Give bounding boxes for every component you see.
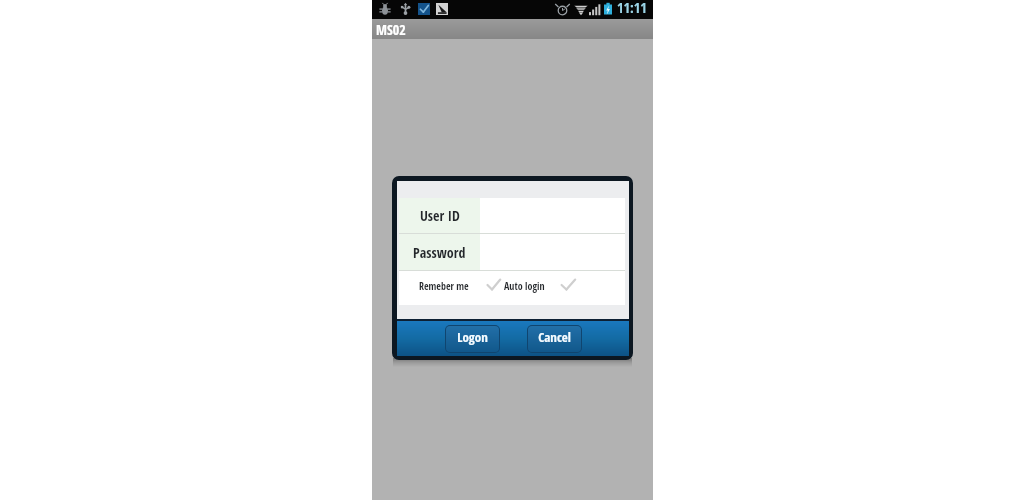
staticText: Logon <box>457 328 488 346</box>
button[interactable]: MS02 <box>372 19 653 39</box>
button[interactable]: User ID <box>399 198 480 233</box>
staticText: MS02 <box>376 20 406 39</box>
button[interactable]: Logon <box>446 326 499 352</box>
staticText: Auto login <box>504 279 545 293</box>
button[interactable]: Password <box>399 234 480 270</box>
button[interactable]: Cancel <box>528 326 581 352</box>
button[interactable]: Remeber me <box>399 271 501 305</box>
staticText: 11:11 <box>617 0 647 17</box>
staticText: Password <box>413 243 466 262</box>
staticText: Cancel <box>538 328 571 346</box>
staticText: Remeber me <box>419 279 469 293</box>
button[interactable]: Auto login <box>504 271 599 305</box>
staticText: User ID <box>420 206 460 225</box>
